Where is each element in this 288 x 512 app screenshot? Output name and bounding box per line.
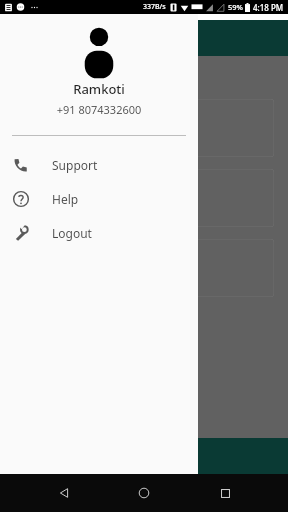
button[interactable]: Total Transactions: [14, 99, 274, 157]
staticText: Help: [52, 191, 79, 207]
button[interactable]: Recent apps: [208, 476, 242, 510]
staticText: 337B/s: [143, 2, 166, 12]
staticText: Logout: [52, 225, 92, 241]
staticText: +91 8074332600: [0, 102, 198, 117]
staticText: 59%: [228, 2, 243, 12]
staticText: SELECT DATE RANGE: [14, 70, 131, 85]
staticText: Support: [52, 157, 98, 173]
staticText: Total Transactions: [22, 121, 115, 136]
staticText: Ramkoti: [0, 80, 198, 98]
button[interactable]: Total Non Activated: [14, 239, 274, 297]
button[interactable]: Total Activated: [14, 169, 274, 227]
button[interactable]: Support: [0, 148, 198, 182]
button[interactable]: Help: [0, 182, 198, 216]
staticText: 4:18 PM: [253, 2, 284, 13]
staticText: Total Activated: [22, 191, 98, 206]
button[interactable]: Home: [127, 476, 161, 510]
button[interactable]: Logout: [0, 216, 198, 250]
button[interactable]: Back: [47, 476, 81, 510]
